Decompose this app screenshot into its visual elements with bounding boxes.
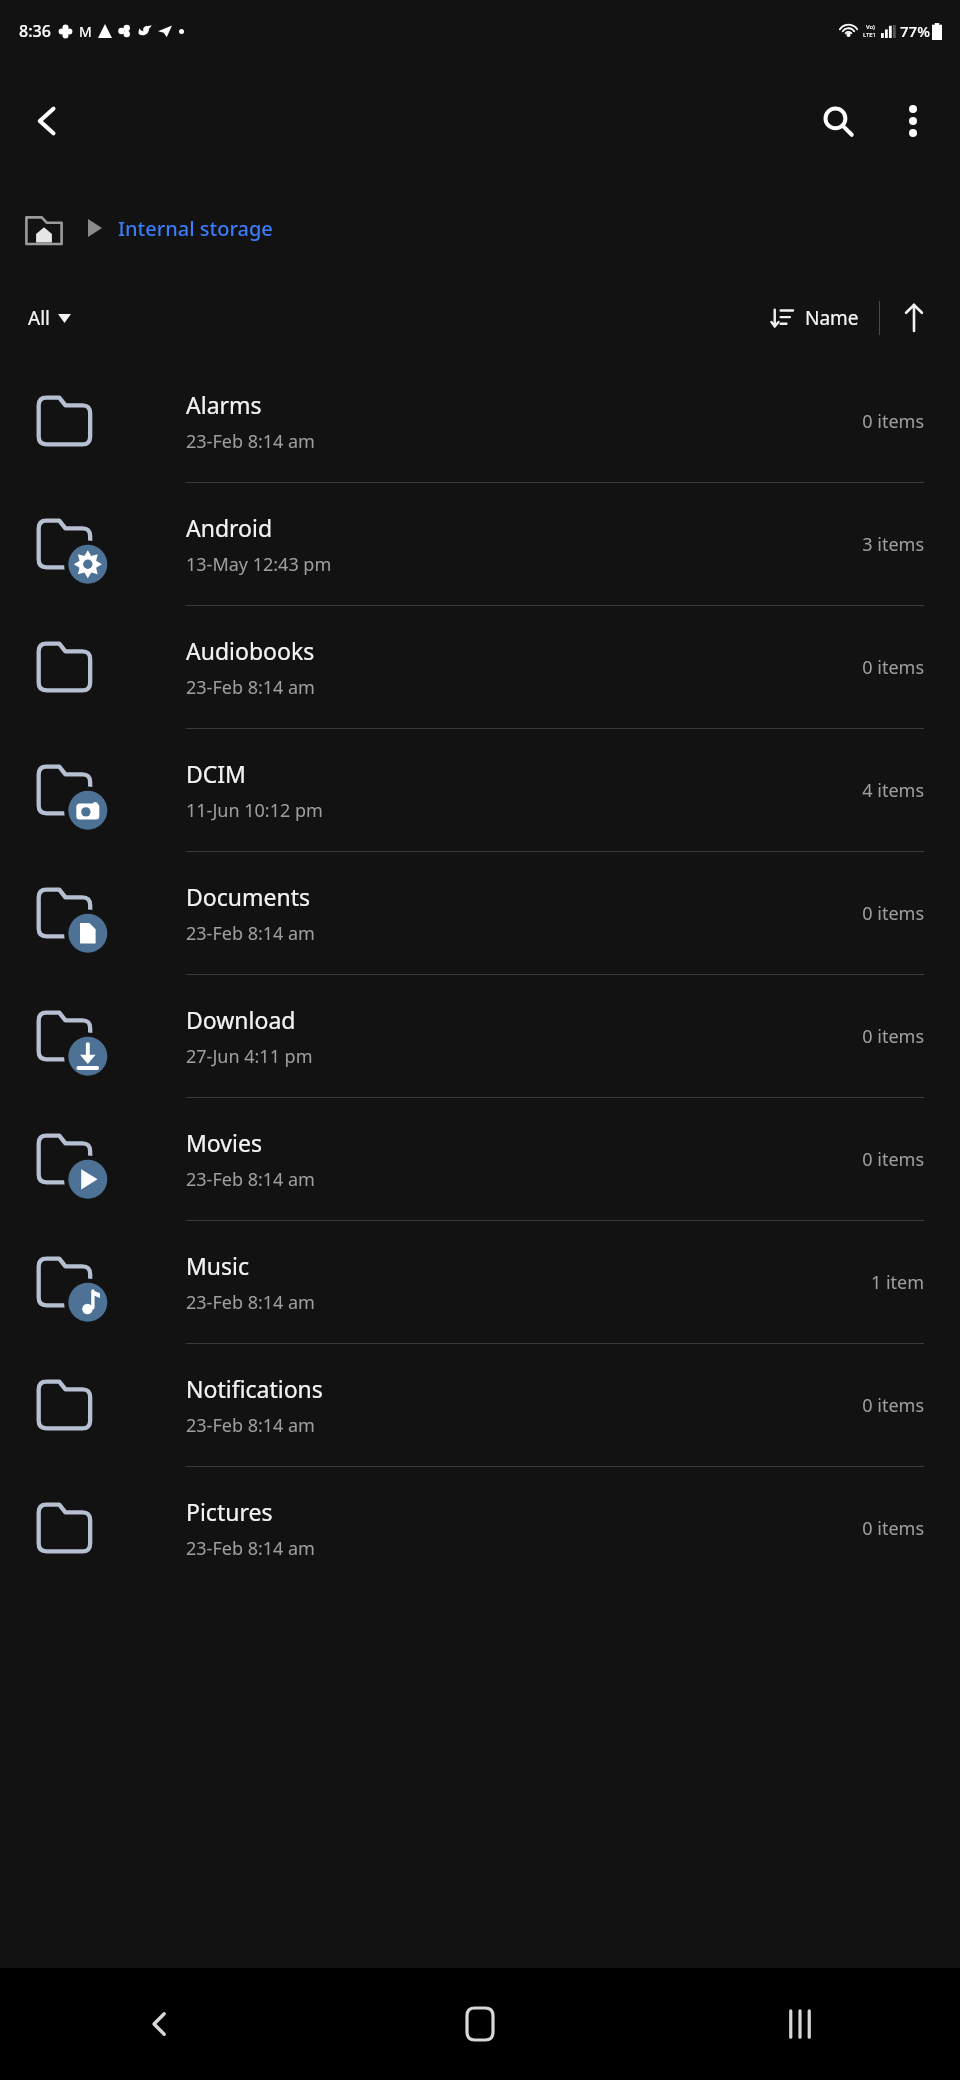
button[interactable]: Internal storage (118, 215, 273, 242)
staticText: 23-Feb 8:14 am (186, 921, 315, 946)
staticText: LTE1 (863, 31, 877, 39)
staticText: 8:36 (19, 20, 51, 42)
staticText: Name (805, 305, 859, 331)
button[interactable]: Notifications (0, 1344, 960, 1466)
staticText: 11-Jun 10:12 pm (186, 798, 323, 823)
staticText: 1 item (870, 1270, 924, 1295)
staticText: Android (186, 512, 273, 543)
button[interactable]: Documents (0, 852, 960, 974)
staticText: 23-Feb 8:14 am (186, 1290, 315, 1315)
staticText: 23-Feb 8:14 am (186, 1536, 315, 1561)
staticText: 0 items (862, 409, 924, 434)
staticText: Movies (186, 1127, 262, 1158)
button[interactable]: Android (0, 483, 960, 605)
staticText: 0 items (862, 1393, 924, 1418)
staticText: 0 items (862, 1516, 924, 1541)
button[interactable]: Music (0, 1221, 960, 1343)
button[interactable]: Home (320, 1968, 640, 2080)
staticText: 0 items (862, 655, 924, 680)
button[interactable]: Back (14, 87, 82, 155)
staticText: 3 items (862, 532, 924, 557)
staticText: DCIM (186, 758, 246, 789)
staticText: Music (186, 1250, 250, 1281)
staticText: 4 items (862, 778, 924, 803)
button[interactable]: Movies (0, 1098, 960, 1220)
staticText: 23-Feb 8:14 am (186, 1167, 315, 1192)
button[interactable]: More options (882, 90, 944, 152)
button[interactable]: Home storage (22, 209, 66, 247)
staticText: 0 items (862, 1024, 924, 1049)
staticText: 0 items (862, 1147, 924, 1172)
button[interactable]: Alarms (0, 360, 960, 482)
button[interactable]: Name (765, 297, 865, 339)
staticText: Vo) (866, 23, 875, 31)
staticText: M (79, 22, 92, 41)
staticText: 0 items (862, 901, 924, 926)
staticText: Notifications (186, 1373, 323, 1404)
staticText: 23-Feb 8:14 am (186, 1413, 315, 1438)
button[interactable]: Search (804, 87, 872, 155)
staticText: 23-Feb 8:14 am (186, 429, 315, 454)
button[interactable]: Audiobooks (0, 606, 960, 728)
staticText: 27-Jun 4:11 pm (186, 1044, 313, 1069)
button[interactable]: Back (0, 1968, 320, 2080)
staticText: Internal storage (118, 215, 273, 242)
button[interactable]: DCIM (0, 729, 960, 851)
button[interactable]: Download (0, 975, 960, 1097)
staticText: 77% (900, 21, 930, 41)
staticText: Audiobooks (186, 635, 315, 666)
button[interactable]: Sort ascending (886, 290, 942, 346)
staticText: 13-May 12:43 pm (186, 552, 332, 577)
button[interactable]: Recents (640, 1968, 960, 2080)
staticText: Alarms (186, 389, 262, 420)
staticText: Documents (186, 881, 310, 912)
staticText: 23-Feb 8:14 am (186, 675, 315, 700)
button[interactable]: Pictures (0, 1467, 960, 1589)
staticText: Download (186, 1004, 296, 1035)
staticText: All (28, 305, 50, 331)
button[interactable]: All (20, 299, 79, 337)
staticText: Pictures (186, 1496, 273, 1527)
